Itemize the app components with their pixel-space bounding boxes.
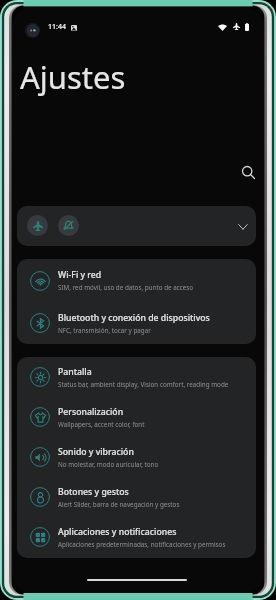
staticText: Bluetooth y conexión de dispositivos (58, 312, 210, 324)
button[interactable]: Bluetooth y conexión de dispositivos (17, 302, 256, 344)
staticText: NFC, transmisión, tocar y pagar (58, 326, 151, 335)
staticText: Aplicaciones predeterminadas, notificaci… (58, 540, 226, 549)
staticText: Wi-Fi y red (58, 269, 102, 281)
staticText: SIM, red móvil, uso de datos, punto de a… (58, 283, 194, 292)
staticText: Sonido y vibración (58, 446, 134, 458)
button[interactable]: Wi-Fi y red (17, 259, 256, 302)
button[interactable]: Botones y gestos (17, 477, 256, 517)
staticText: No molestar, modo auricular, tono (58, 460, 159, 469)
button[interactable] (17, 206, 256, 246)
button[interactable]: Buscar (236, 160, 260, 184)
staticText: Wallpapers, accent color, font (58, 420, 145, 429)
staticText: Personalización (58, 406, 124, 418)
staticText: Ajustes (20, 56, 126, 98)
button[interactable]: Pantalla (17, 357, 256, 397)
staticText: Pantalla (58, 366, 92, 378)
staticText: Botones y gestos (58, 486, 129, 498)
staticText: Aplicaciones y notificaciones (58, 526, 177, 538)
staticText: 11:44 (48, 22, 66, 32)
staticText: Alert Slider, barra de navegación y gest… (58, 500, 180, 509)
button[interactable]: Sonido y vibración (17, 437, 256, 477)
staticText: Status bar, ambient display, Vision comf… (58, 380, 229, 389)
button[interactable]: Aplicaciones y notificaciones (17, 517, 256, 557)
button[interactable]: Personalización (17, 397, 256, 437)
